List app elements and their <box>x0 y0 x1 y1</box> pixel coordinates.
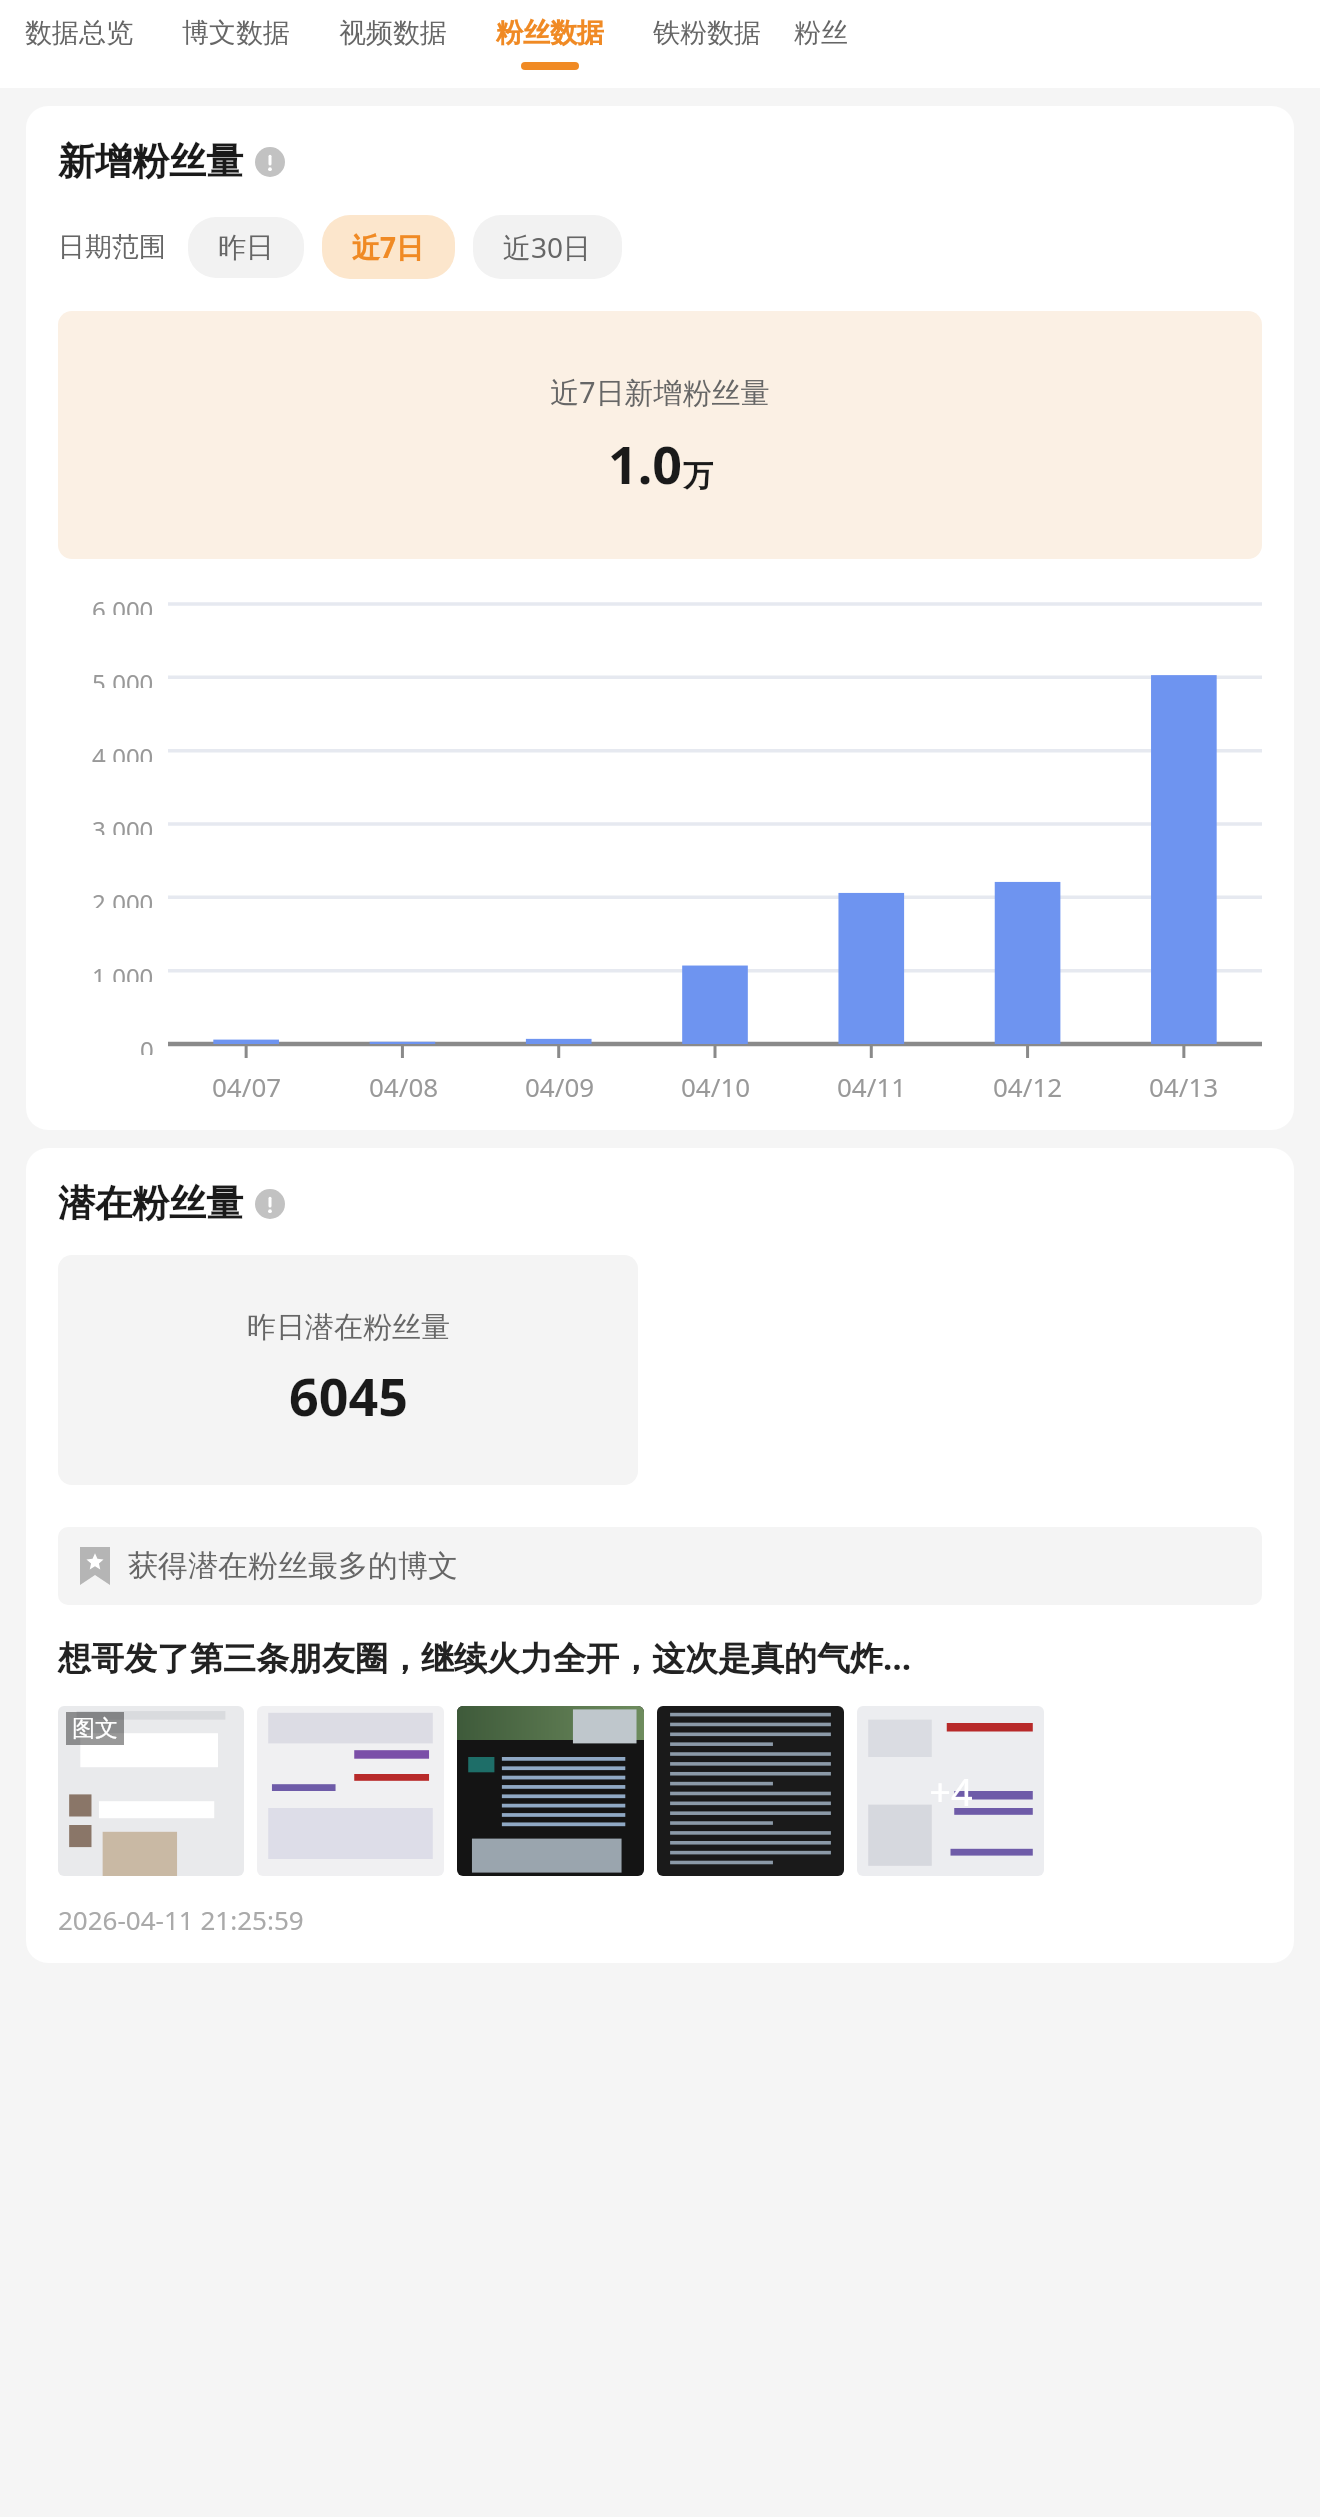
staticText: 1,000 <box>92 960 154 982</box>
staticText: 铁粉数据 <box>653 16 761 50</box>
staticText: 获得潜在粉丝最多的博文 <box>128 1547 458 1585</box>
staticText: 昨日 <box>218 230 274 265</box>
button[interactable]: Post image 4 <box>657 1706 844 1876</box>
button[interactable]: Post image 2 <box>257 1706 444 1876</box>
staticText: 近30日 <box>503 228 592 266</box>
staticText: 图文 <box>72 1714 118 1743</box>
staticText: 6045 <box>289 1360 408 1431</box>
staticText: 04/10 <box>681 1069 751 1104</box>
button[interactable]: Post image 5 <box>857 1706 1044 1876</box>
staticText: 想哥发了第三条朋友圈，继续火力全开，这次是真的气炸… <box>58 1635 912 1680</box>
button[interactable]: 粉丝数据 <box>471 0 628 88</box>
staticText: 近7日 <box>352 228 425 266</box>
staticText: 04/12 <box>993 1069 1063 1104</box>
button[interactable]: 视频数据 <box>314 0 471 88</box>
staticText: 5,000 <box>92 666 154 688</box>
button[interactable]: 近7日 <box>322 215 455 279</box>
staticText: 粉丝 <box>794 16 848 50</box>
button[interactable]: 数据总览 <box>0 0 157 88</box>
staticText: 6,000 <box>92 593 154 615</box>
button[interactable]: Post image 3 <box>457 1706 644 1876</box>
staticText: +4 <box>929 1765 973 1817</box>
staticText: 1.0 <box>608 428 683 499</box>
staticText: 数据总览 <box>25 16 133 50</box>
button[interactable]: 昨日 <box>188 217 304 278</box>
staticText: 新增粉丝量 <box>58 138 243 185</box>
staticText: 04/11 <box>837 1069 907 1104</box>
staticText: 2026-04-11 21:25:59 <box>58 1902 304 1937</box>
staticText: 2,000 <box>92 886 154 908</box>
button[interactable]: Post image 1 <box>58 1706 244 1876</box>
button[interactable]: 粉丝 <box>785 0 857 88</box>
staticText: 视频数据 <box>339 16 447 50</box>
staticText: 日期范围 <box>58 230 166 264</box>
staticText: 近7日新增粉丝量 <box>550 372 770 412</box>
button[interactable]: 博文数据 <box>157 0 314 88</box>
staticText: 博文数据 <box>182 16 290 50</box>
staticText: 04/09 <box>525 1069 595 1104</box>
button[interactable]: 铁粉数据 <box>628 0 785 88</box>
staticText: 3,000 <box>92 813 154 835</box>
button[interactable]: Bookmark <box>58 1527 1262 1605</box>
staticText: 粉丝数据 <box>496 16 604 50</box>
staticText: 潜在粉丝量 <box>58 1180 243 1227</box>
other: Bookmark <box>80 1547 110 1585</box>
staticText: 昨日潜在粉丝量 <box>247 1309 450 1346</box>
staticText: 0 <box>140 1033 154 1055</box>
button[interactable]: 近30日 <box>473 215 622 279</box>
staticText: 4,000 <box>92 740 154 762</box>
staticText: 04/13 <box>1149 1069 1219 1104</box>
staticText: 04/07 <box>212 1069 282 1104</box>
staticText: 万 <box>683 457 713 495</box>
staticText: 04/08 <box>369 1069 439 1104</box>
